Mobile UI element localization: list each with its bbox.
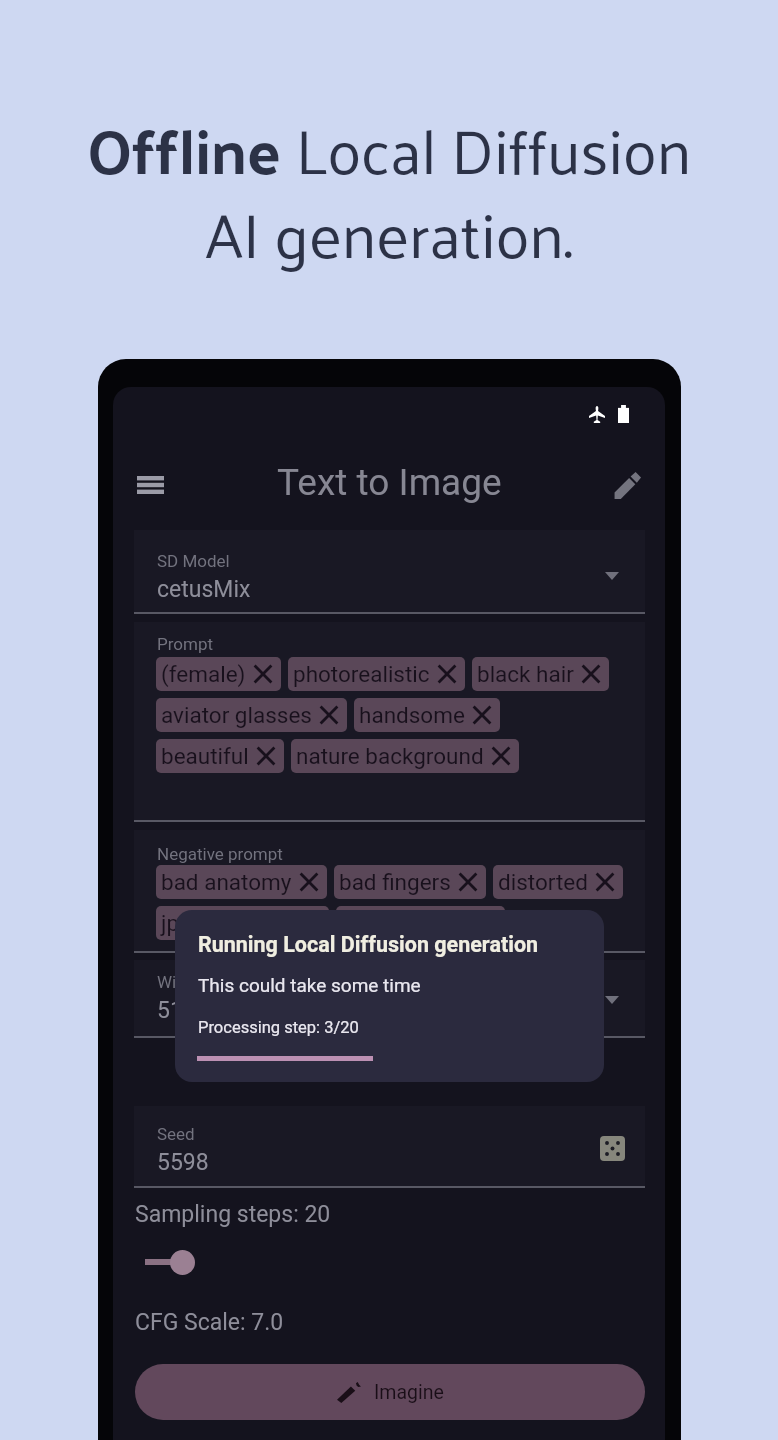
button[interactable]: black hair: [472, 657, 609, 691]
staticText: bad fingers: [339, 869, 451, 895]
staticText: Processing step: 3/20: [198, 1018, 359, 1037]
button[interactable]: bad anatomy: [156, 865, 327, 899]
button[interactable]: distorted: [493, 865, 623, 899]
button[interactable]: Randomise seed: [600, 1136, 625, 1161]
staticText: Offline Local Diffusion: [0, 92, 778, 204]
staticText: beautiful: [161, 743, 249, 769]
staticText: Running Local Diffusion generation: [198, 932, 539, 957]
staticText: Width: [157, 972, 201, 992]
staticText: handsome: [359, 702, 465, 728]
staticText: SD Model: [157, 551, 230, 571]
staticText: Prompt: [157, 634, 214, 654]
staticText: CFG Scale: 7.0: [135, 1309, 284, 1336]
staticText: aviator glasses: [161, 702, 312, 728]
staticText: black hair: [477, 661, 574, 687]
staticText: Negative prompt: [157, 844, 283, 864]
staticText: Text to Image: [277, 461, 502, 504]
button[interactable]: Sampling steps slider: [170, 1250, 195, 1275]
button[interactable]: handsome: [354, 698, 500, 732]
staticText: distorted: [498, 869, 588, 895]
button[interactable]: Edit prompt: [607, 465, 647, 505]
staticText: bad anatomy: [161, 869, 292, 895]
button[interactable]: worst quality: [336, 906, 505, 940]
button[interactable]: beautiful: [156, 739, 284, 773]
button[interactable]: Expand options: [598, 566, 625, 586]
staticText: 512: [157, 997, 196, 1024]
staticText: Imagine: [374, 1381, 444, 1404]
button[interactable]: photorealistic: [288, 657, 465, 691]
staticText: Seed: [157, 1124, 195, 1144]
button[interactable]: bad fingers: [334, 865, 486, 899]
staticText: photorealistic: [293, 661, 430, 687]
button[interactable]: Expand options: [598, 990, 625, 1010]
button[interactable]: aviator glasses: [156, 698, 347, 732]
button[interactable]: (female): [156, 657, 281, 691]
staticText: 5598: [157, 1149, 209, 1176]
button[interactable]: Open navigation menu: [130, 465, 170, 505]
staticText: AI generation.: [0, 176, 778, 288]
button[interactable]: nature background: [291, 739, 519, 773]
button[interactable]: jpeg artifacts: [156, 906, 329, 940]
button[interactable]: Imagine: [135, 1364, 645, 1420]
staticText: worst quality: [341, 910, 470, 936]
staticText: Sampling steps: 20: [135, 1201, 331, 1228]
staticText: nature background: [296, 743, 484, 769]
staticText: cetusMix: [157, 576, 251, 603]
staticText: jpeg artifacts: [161, 910, 294, 936]
staticText: This could take some time: [198, 974, 421, 996]
staticText: (female): [161, 661, 246, 687]
